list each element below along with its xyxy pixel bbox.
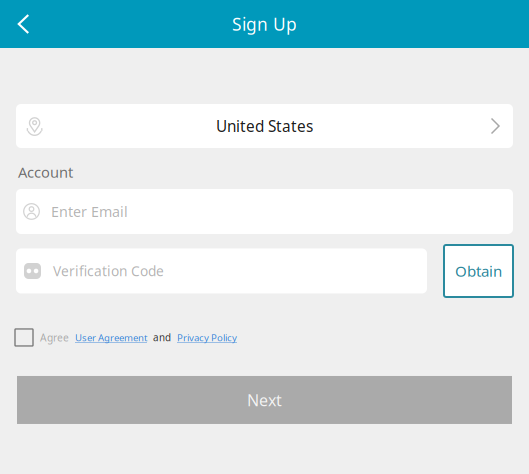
staticText: Sign Up [232, 12, 297, 36]
button[interactable]: Next [0, 376, 529, 424]
button[interactable]: Privacy Policy [171, 331, 237, 344]
button[interactable]: United States [0, 104, 529, 148]
staticText: Obtain [455, 261, 502, 281]
staticText: and [153, 331, 171, 344]
staticText: Next [247, 389, 282, 411]
button[interactable]: User Agreement [69, 331, 147, 344]
staticText: Privacy Policy [177, 331, 237, 344]
button[interactable]: Back [0, 0, 44, 48]
staticText: Account [18, 162, 73, 182]
staticText: Enter Email [51, 202, 128, 221]
button[interactable]: Obtain [444, 245, 513, 297]
staticText: Verification Code [53, 262, 164, 280]
staticText: User Agreement [75, 331, 147, 344]
button[interactable]: Agree to terms [15, 329, 33, 346]
staticText: Agree [40, 330, 69, 344]
staticText: United States [216, 116, 313, 136]
